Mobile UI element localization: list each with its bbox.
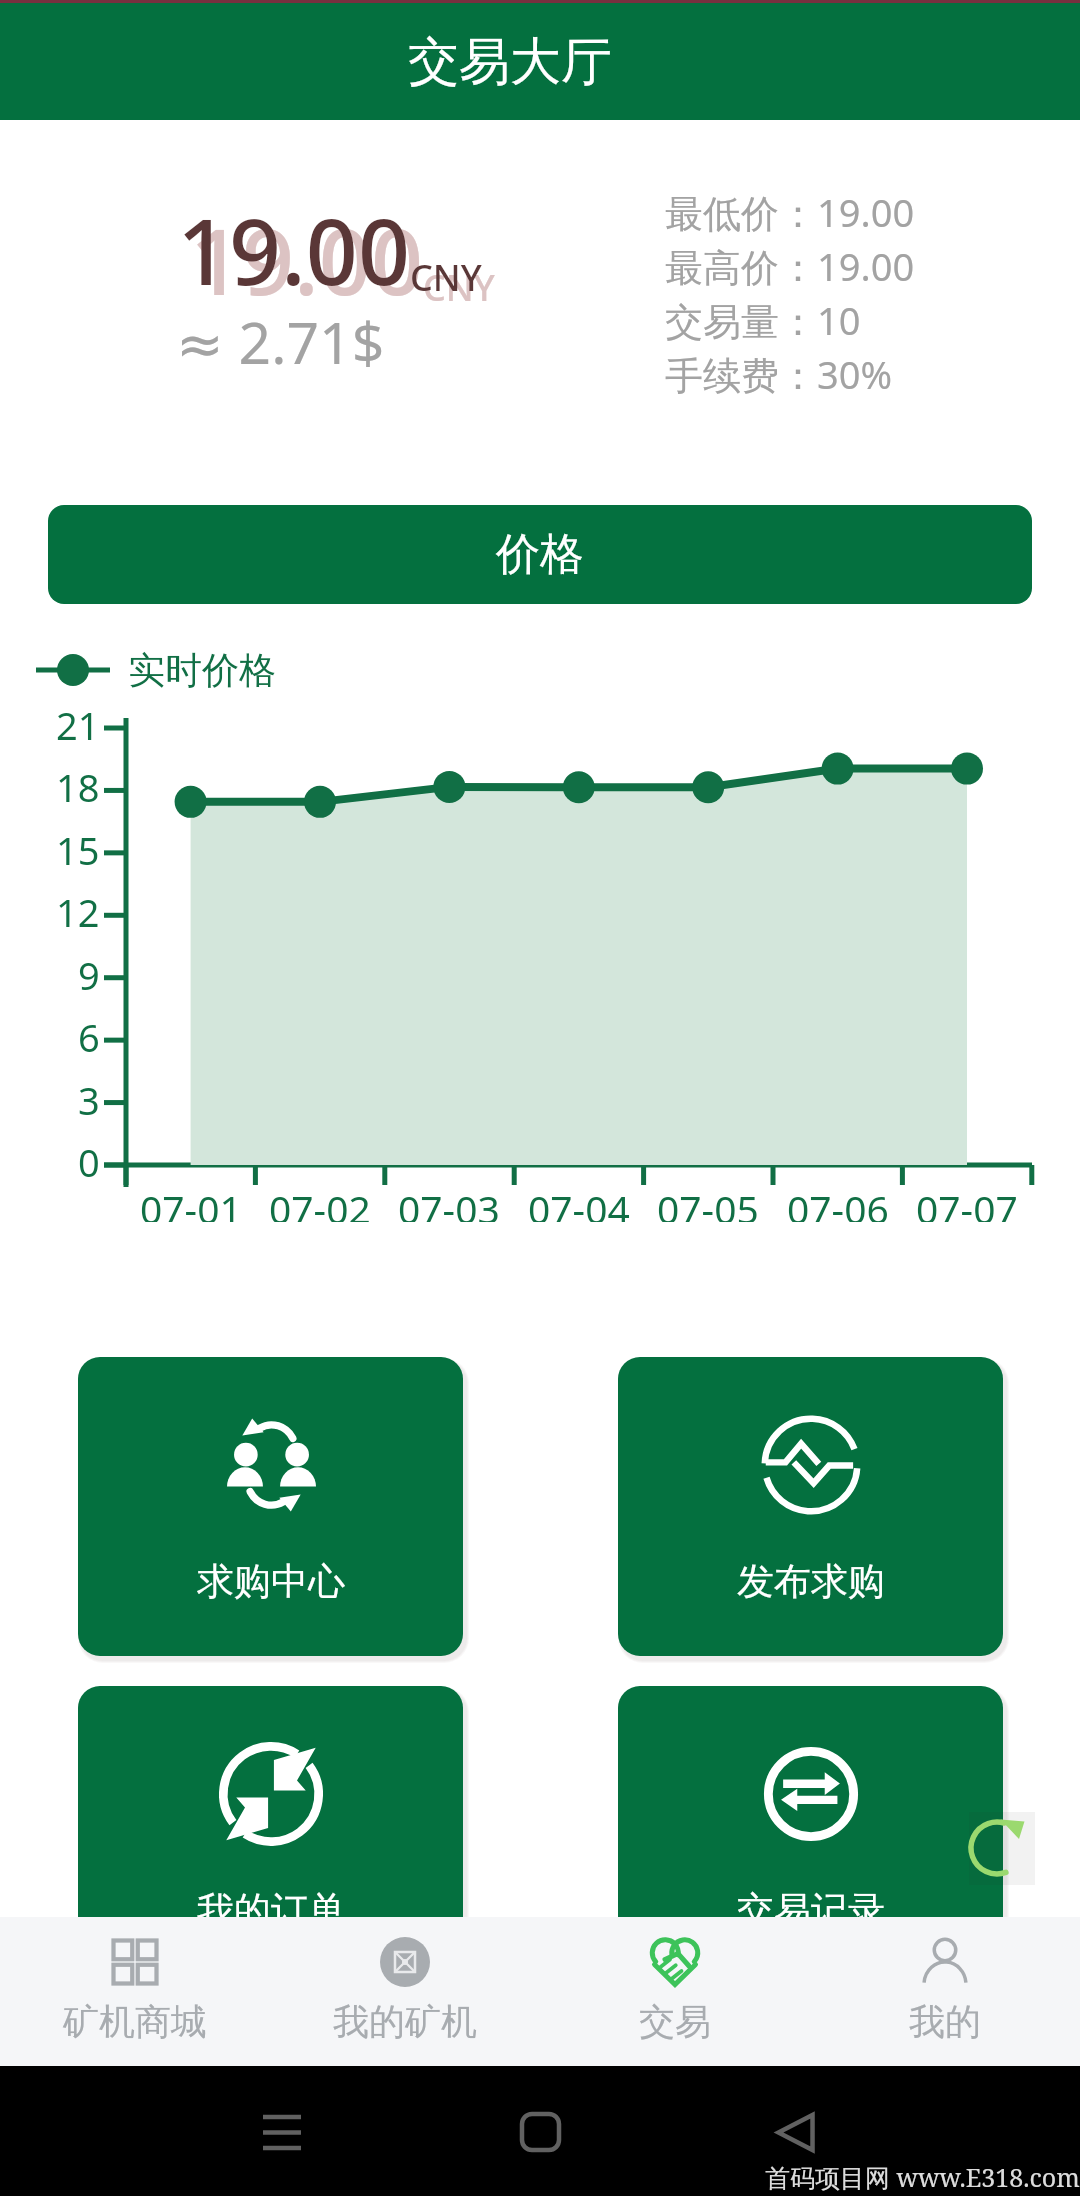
button[interactable]: Back [745,2082,845,2182]
staticText: CNY [410,253,482,302]
button[interactable]: Recents [232,2082,332,2182]
staticText: 12 [56,886,100,936]
staticText: 交易量：10 [665,294,861,346]
button[interactable]: 我的订单 [78,1686,463,1985]
staticText: 21 [56,699,100,749]
staticText: 价格 [496,527,584,582]
staticText: 07-07 [916,1182,1018,1222]
staticText: 9 [78,949,100,999]
button[interactable]: 求购中心 [78,1357,463,1656]
staticText: 07-03 [398,1182,500,1222]
staticText: 3 [78,1074,100,1124]
staticText: 发布求购 [737,1558,885,1605]
staticText: CNY [423,263,495,312]
staticText: 0 [78,1136,100,1186]
staticText: 07-05 [657,1182,759,1222]
staticText: 首码项目网 www.E318.com [765,2160,1080,2194]
staticText: 求购中心 [197,1558,345,1605]
staticText: 18 [56,761,100,811]
staticText: 07-02 [269,1182,371,1222]
staticText: 最高价：19.00 [665,240,915,292]
button[interactable]: 价格 [48,505,1032,604]
staticText: 07-01 [140,1182,242,1222]
staticText: 我的订单 [197,1887,345,1934]
staticText: 6 [78,1011,100,1061]
button[interactable]: 交易记录 [618,1686,1003,1985]
button[interactable]: 我的矿机 [270,1917,540,2066]
staticText: 交易 [639,1999,711,2044]
button[interactable]: 矿机商城 [0,1917,270,2066]
staticText: 19.00 [190,198,423,322]
staticText: 交易大厅 [408,30,612,94]
staticText: 矿机商城 [63,1999,207,2044]
staticText: 15 [56,824,100,874]
button[interactable]: 发布求购 [618,1357,1003,1656]
staticText: ≈ 2.71$ [176,303,385,381]
staticText: 手续费：30% [665,348,893,400]
button[interactable]: Refresh [969,1812,1035,1885]
button[interactable]: 交易 [540,1917,810,2066]
staticText: 实时价格 [128,647,276,694]
staticText: 19.00 [177,188,410,312]
button[interactable]: Home [490,2082,590,2182]
staticText: 交易记录 [737,1887,885,1934]
staticText: 我的矿机 [333,1999,477,2044]
staticText: 07-04 [528,1182,630,1222]
staticText: 我的 [909,1999,981,2044]
staticText: 最低价：19.00 [665,186,915,238]
staticText: 07-06 [787,1182,889,1222]
button[interactable]: 我的 [810,1917,1080,2066]
